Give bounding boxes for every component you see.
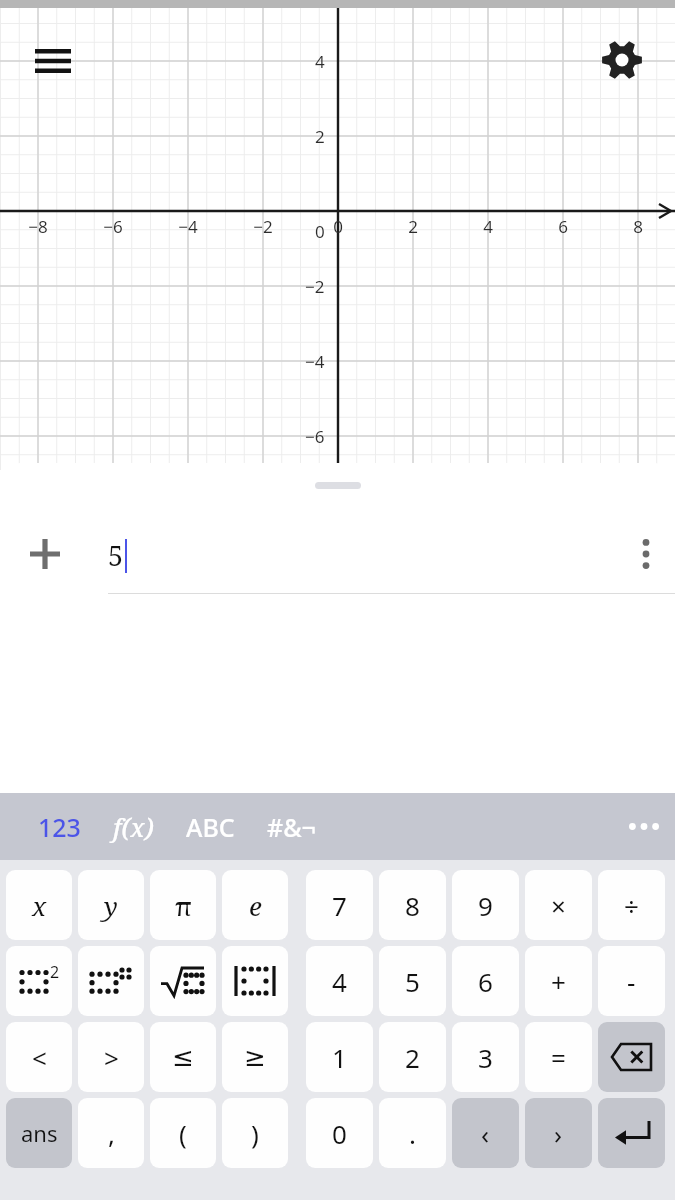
staticText: −2 [253, 215, 273, 238]
staticText: 6 [558, 215, 568, 238]
staticText: 5 [405, 964, 420, 999]
button[interactable]: 5 [379, 946, 446, 1016]
staticText: › [554, 1116, 563, 1151]
button[interactable]: Menu [22, 38, 84, 84]
staticText: 9 [478, 888, 493, 923]
button[interactable]: ) [222, 1098, 288, 1168]
staticText: e [249, 888, 262, 923]
staticText: −2 [305, 275, 325, 298]
button[interactable]: More [613, 793, 675, 860]
button[interactable]: , [78, 1098, 144, 1168]
button[interactable]: + [525, 946, 592, 1016]
button[interactable]: #&¬ [251, 793, 332, 860]
staticText: ≤ [172, 1042, 194, 1072]
button[interactable] [598, 1098, 665, 1168]
staticText: ‹ [481, 1116, 490, 1151]
staticText: ( [179, 1116, 187, 1151]
button[interactable]: 3 [452, 1022, 519, 1092]
staticText: 8 [633, 215, 643, 238]
staticText: 2 [50, 961, 60, 983]
staticText: 5 [108, 537, 124, 574]
staticText: ) [251, 1116, 259, 1151]
staticText: 2 [408, 215, 418, 238]
button[interactable] [78, 946, 144, 1016]
button[interactable]: 7 [306, 870, 373, 940]
button[interactable]: 9 [452, 870, 519, 940]
staticText: 4 [483, 215, 493, 238]
staticText: > [104, 1040, 119, 1075]
staticText: −6 [305, 425, 325, 448]
button[interactable]: ‹ [452, 1098, 519, 1168]
button[interactable]: 2 [6, 946, 72, 1016]
staticText: ≥ [244, 1042, 266, 1072]
staticText: −4 [178, 215, 198, 238]
button[interactable]: ans [6, 1098, 72, 1168]
button[interactable]: x [6, 870, 72, 940]
staticText: y [104, 888, 118, 923]
staticText: × [551, 888, 566, 923]
staticText: 4 [332, 964, 347, 999]
staticText: −4 [305, 350, 325, 373]
staticText: 0 [332, 1116, 347, 1151]
button[interactable]: × [525, 870, 592, 940]
button[interactable]: 8 [379, 870, 446, 940]
button[interactable]: ( [150, 1098, 216, 1168]
staticText: . [409, 1116, 416, 1151]
staticText: 123 [38, 810, 81, 844]
button[interactable]: ÷ [598, 870, 665, 940]
button[interactable]: 123 [22, 793, 97, 860]
staticText: < [32, 1040, 47, 1075]
staticText: f(x) [113, 810, 154, 844]
button[interactable]: ≤ [150, 1022, 216, 1092]
staticText: - [627, 964, 636, 999]
staticText: −6 [103, 215, 123, 238]
staticText: ÷ [624, 888, 639, 923]
button[interactable]: ≥ [222, 1022, 288, 1092]
button[interactable]: 4 [306, 946, 373, 1016]
button[interactable] [598, 1022, 665, 1092]
button[interactable]: π [150, 870, 216, 940]
button[interactable]: 6 [452, 946, 519, 1016]
button[interactable] [222, 946, 288, 1016]
button[interactable]: More options [617, 515, 675, 593]
staticText: 7 [332, 888, 347, 923]
staticText: 8 [405, 888, 420, 923]
staticText: + [551, 964, 566, 999]
staticText: π [175, 888, 192, 923]
button[interactable]: > [78, 1022, 144, 1092]
button[interactable] [150, 946, 216, 1016]
staticText: 2 [405, 1040, 420, 1075]
staticText: 4 [315, 50, 325, 73]
button[interactable]: e [222, 870, 288, 940]
staticText: −8 [28, 215, 48, 238]
staticText: 3 [478, 1040, 493, 1075]
button[interactable]: = [525, 1022, 592, 1092]
staticText: x [32, 888, 47, 923]
staticText: 0 [333, 215, 343, 238]
button[interactable]: . [379, 1098, 446, 1168]
button[interactable]: Add expression [0, 515, 675, 593]
staticText: 1 [332, 1040, 347, 1075]
staticText: 6 [478, 964, 493, 999]
button[interactable]: › [525, 1098, 592, 1168]
staticText: 0 [315, 220, 325, 243]
button[interactable]: 0 [306, 1098, 373, 1168]
staticText: = [551, 1040, 566, 1075]
staticText: #&¬ [267, 810, 316, 844]
button[interactable]: f(x) [97, 793, 170, 860]
staticText: , [108, 1116, 115, 1151]
staticText: ABC [186, 810, 235, 844]
button[interactable]: ABC [170, 793, 251, 860]
button[interactable]: Add expression [18, 515, 72, 593]
button[interactable]: y [78, 870, 144, 940]
staticText: ans [21, 1118, 58, 1148]
button[interactable]: Settings [594, 32, 650, 88]
staticText: 2 [315, 125, 325, 148]
button[interactable]: 1 [306, 1022, 373, 1092]
button[interactable]: - [598, 946, 665, 1016]
button[interactable]: 2 [379, 1022, 446, 1092]
button[interactable]: < [6, 1022, 72, 1092]
